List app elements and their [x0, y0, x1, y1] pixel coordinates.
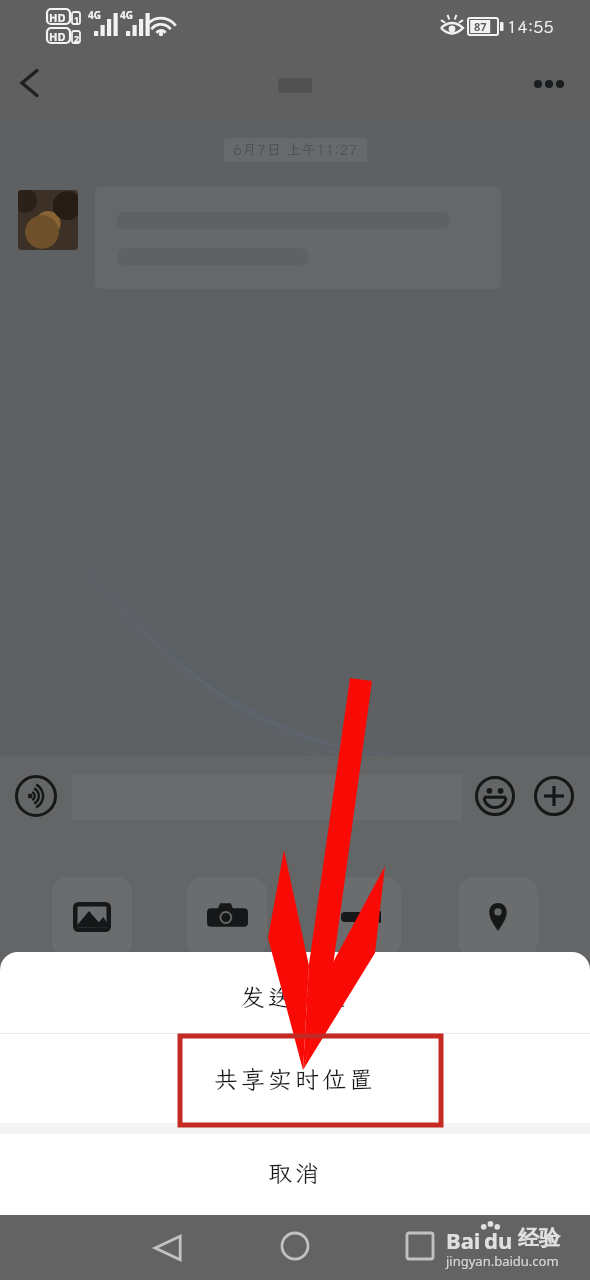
button[interactable]: 取消: [0, 1134, 590, 1212]
button[interactable]: Voice input: [15, 775, 57, 817]
staticText: 2: [74, 32, 80, 44]
button[interactable]: Emoji: [475, 776, 515, 816]
staticText: 共享实时位置: [214, 1063, 376, 1095]
staticText: du: [484, 1225, 513, 1255]
button[interactable]: Photo album: [52, 877, 132, 957]
button[interactable]: Camera: [187, 877, 267, 957]
staticText: 取消: [268, 1157, 322, 1189]
button[interactable]: Back: [145, 1226, 189, 1270]
button[interactable]: 共享实时位置: [0, 1034, 590, 1123]
button[interactable]: Video call: [321, 877, 401, 957]
staticText: jingyan.baidu.com: [446, 1252, 559, 1270]
staticText: 发送位置: [241, 981, 349, 1013]
staticText: Bai: [446, 1225, 481, 1255]
staticText: 4G: [88, 8, 101, 22]
staticText: 1: [74, 13, 80, 25]
button[interactable]: More options: [524, 59, 574, 109]
button[interactable]: Back: [3, 63, 53, 113]
button[interactable]: Recent apps: [398, 1224, 442, 1268]
staticText: 87: [474, 19, 487, 34]
staticText: 14:55: [507, 15, 554, 37]
staticText: HD: [49, 10, 66, 25]
staticText: 经验: [518, 1225, 560, 1251]
button[interactable]: Home: [273, 1224, 317, 1268]
staticText: 4G: [120, 8, 133, 22]
button[interactable]: More functions: [534, 776, 574, 816]
staticText: HD: [49, 29, 66, 44]
staticText: 6月7日 上午11:27: [233, 140, 358, 160]
button[interactable]: 发送位置: [0, 952, 590, 1033]
button[interactable]: Location: [458, 877, 538, 957]
